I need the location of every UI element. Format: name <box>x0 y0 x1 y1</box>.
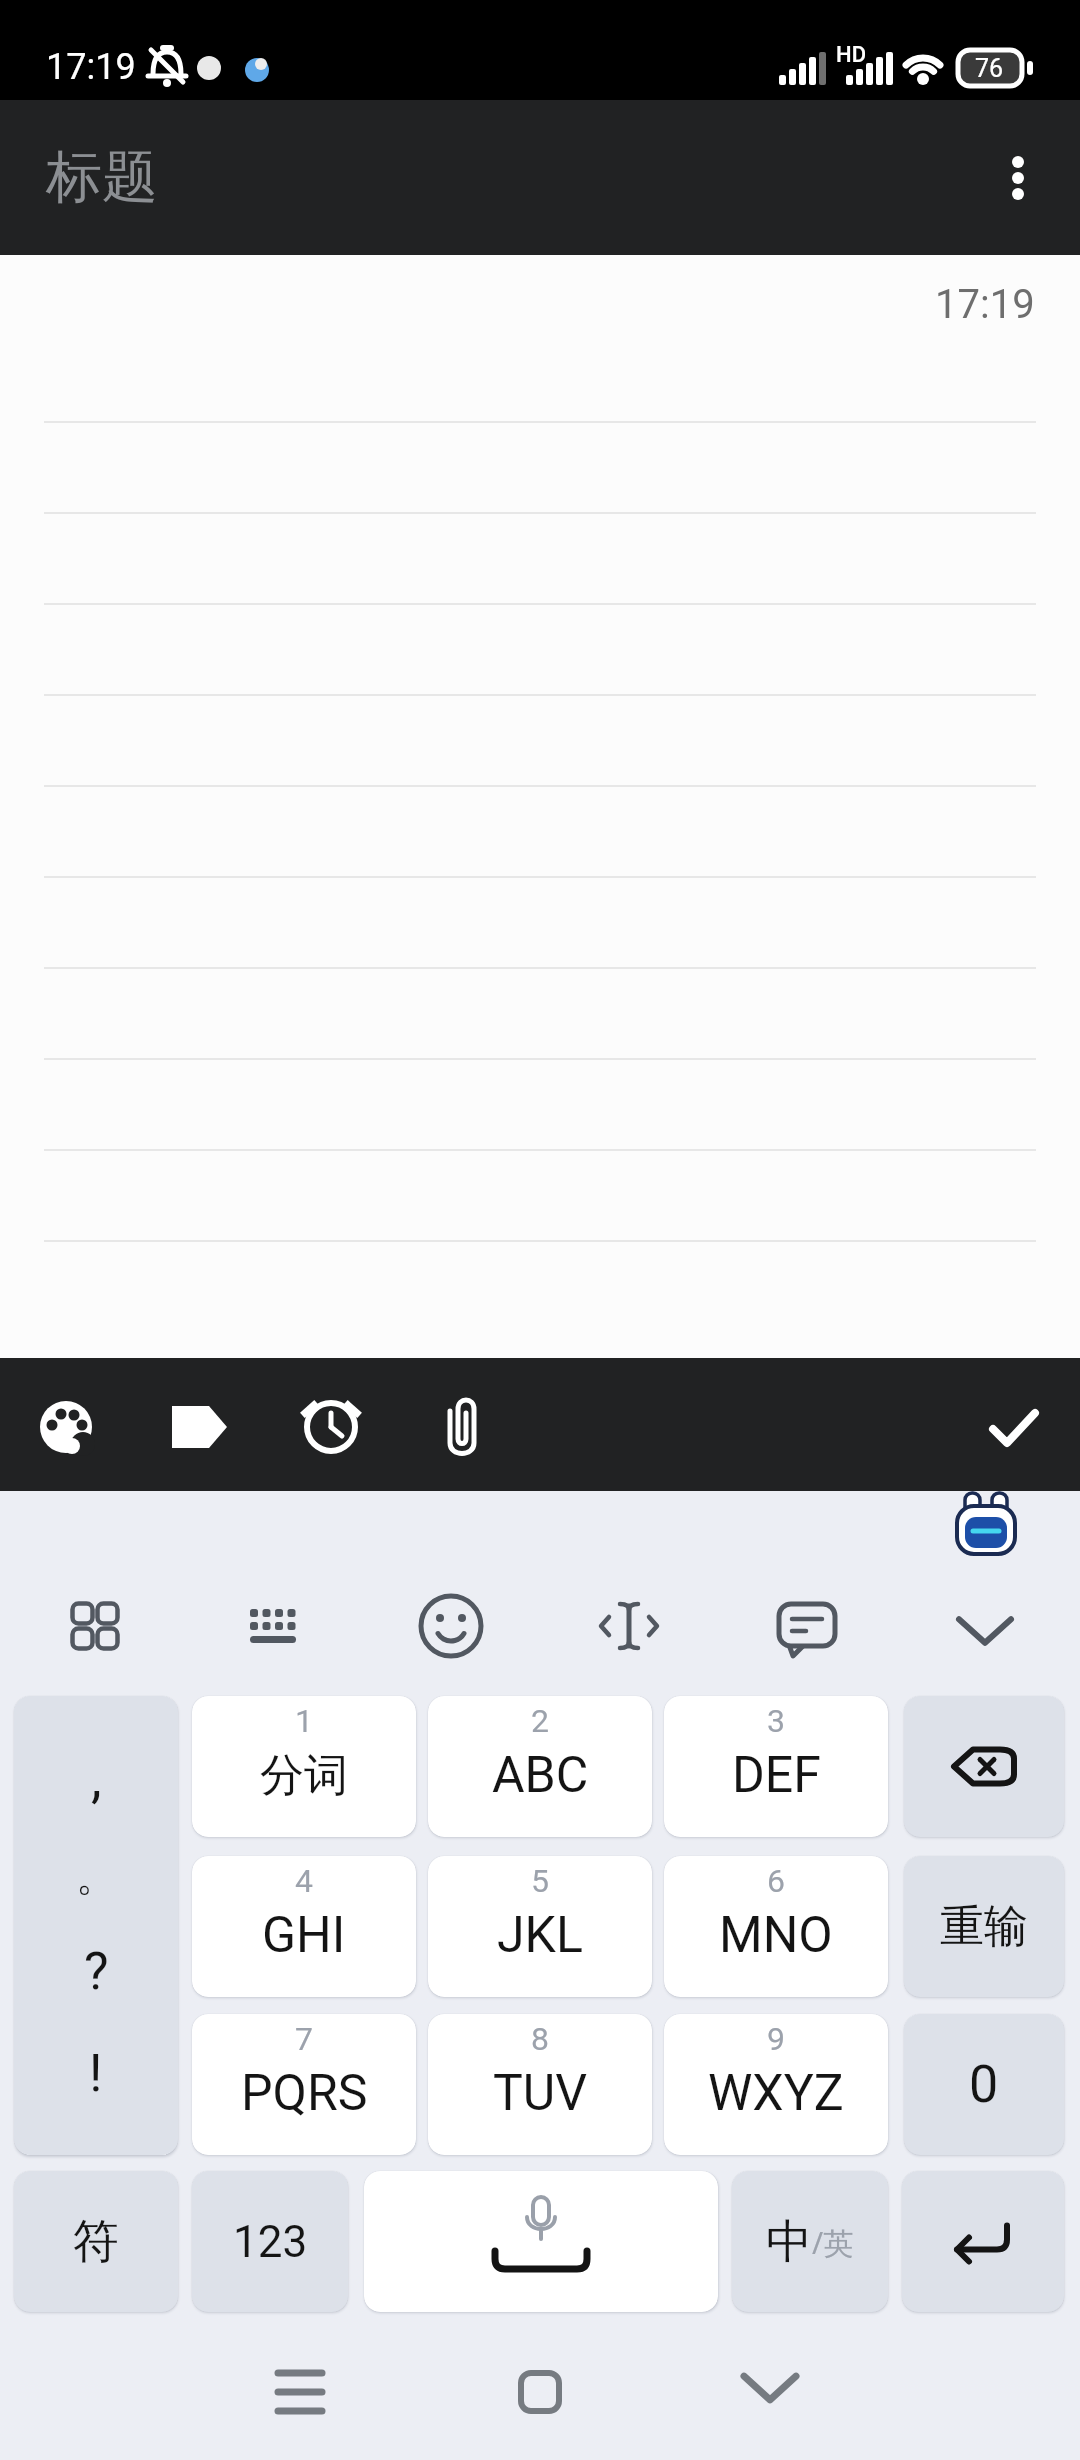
button[interactable] <box>594 1591 664 1661</box>
staticText: DEF <box>732 1746 821 1805</box>
staticText: 5 <box>531 1862 549 1900</box>
staticText: 123 <box>233 2216 308 2268</box>
staticText: HD <box>836 42 867 68</box>
staticText: ! <box>89 2043 103 2104</box>
staticText: 9 <box>767 2020 785 2058</box>
button[interactable] <box>238 1591 308 1661</box>
button[interactable]: 3 <box>664 1696 888 1837</box>
button[interactable] <box>60 1591 130 1661</box>
staticText: JKL <box>497 1906 583 1965</box>
button[interactable] <box>950 1591 1020 1661</box>
button[interactable]: 重输 <box>904 1856 1064 1997</box>
staticText: 分词 <box>260 1748 348 1803</box>
staticText: ? <box>84 1941 109 2002</box>
staticText: TUV <box>493 2064 588 2123</box>
button[interactable]: 2 <box>428 1696 652 1837</box>
button[interactable] <box>735 2357 805 2427</box>
button[interactable] <box>364 2171 718 2312</box>
staticText: WXYZ <box>708 2064 844 2123</box>
staticText: 17:19 <box>935 281 1035 328</box>
button[interactable] <box>986 146 1050 210</box>
button[interactable] <box>505 2357 575 2427</box>
button[interactable] <box>281 1375 381 1475</box>
button[interactable]: , <box>14 1696 178 2155</box>
staticText: , <box>91 1747 102 1810</box>
staticText: 2 <box>531 1702 549 1740</box>
button[interactable]: 符 <box>14 2171 178 2312</box>
button[interactable] <box>772 1591 842 1661</box>
staticText: ABC <box>492 1746 589 1805</box>
button[interactable] <box>963 1375 1063 1475</box>
button[interactable]: 5 <box>428 1856 652 1997</box>
staticText: 符 <box>73 2213 119 2271</box>
staticText: PQRS <box>241 2064 368 2123</box>
button[interactable] <box>265 2357 335 2427</box>
staticText: 17:19 <box>46 46 136 88</box>
button[interactable] <box>149 1375 249 1475</box>
staticText: 标题 <box>46 142 158 213</box>
button[interactable]: 6 <box>664 1856 888 1997</box>
button[interactable] <box>904 1696 1064 1837</box>
button[interactable] <box>412 1375 512 1475</box>
staticText: 7 <box>295 2020 313 2058</box>
staticText: MNO <box>719 1906 833 1965</box>
staticText: 0 <box>969 2054 999 2115</box>
button[interactable] <box>416 1591 486 1661</box>
staticText: 3 <box>767 1702 785 1740</box>
button[interactable] <box>16 1375 116 1475</box>
button[interactable]: 中 <box>732 2171 888 2312</box>
button[interactable] <box>902 2171 1064 2312</box>
staticText: 重输 <box>940 1899 1028 1954</box>
staticText: 76 <box>975 54 1004 83</box>
button[interactable]: 4 <box>192 1856 416 1997</box>
staticText: 中 <box>766 2213 812 2271</box>
staticText: 4 <box>295 1862 313 1900</box>
button[interactable]: 123 <box>192 2171 348 2312</box>
button[interactable]: 9 <box>664 2014 888 2155</box>
button[interactable] <box>951 1491 1021 1557</box>
button[interactable]: 0 <box>904 2014 1064 2155</box>
staticText: GHI <box>262 1906 346 1965</box>
staticText: 8 <box>531 2020 549 2058</box>
staticText: 。 <box>76 1851 116 1901</box>
staticText: 6 <box>767 1862 785 1900</box>
button[interactable]: 8 <box>428 2014 652 2155</box>
button[interactable]: 1 <box>192 1696 416 1837</box>
button[interactable]: 7 <box>192 2014 416 2155</box>
staticText: 1 <box>295 1702 313 1740</box>
staticText: /英 <box>812 2222 854 2263</box>
